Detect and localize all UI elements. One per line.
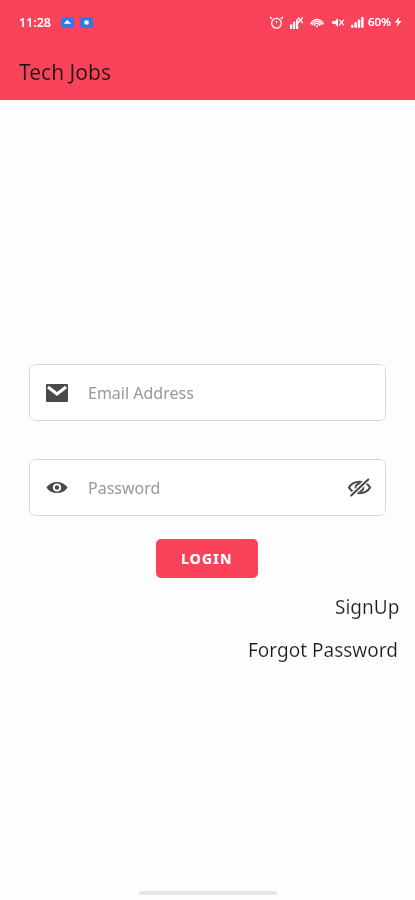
button[interactable]: Password (29, 459, 386, 516)
button[interactable]: SignUp (335, 591, 415, 623)
staticText: LOGIN (181, 549, 233, 568)
button[interactable]: Email Address (29, 364, 386, 421)
staticText: Forgot Password (248, 637, 398, 663)
staticText: 11:28 (19, 14, 52, 31)
staticText: Email Address (88, 382, 371, 404)
button[interactable]: Forgot Password (248, 634, 415, 666)
staticText: 60% (368, 14, 391, 30)
staticText: Tech Jobs (19, 58, 111, 87)
staticText: Password (88, 477, 348, 499)
staticText: SignUp (335, 594, 400, 620)
button[interactable]: LOGIN (156, 539, 258, 578)
button[interactable]: Toggle password visibility (348, 478, 371, 497)
